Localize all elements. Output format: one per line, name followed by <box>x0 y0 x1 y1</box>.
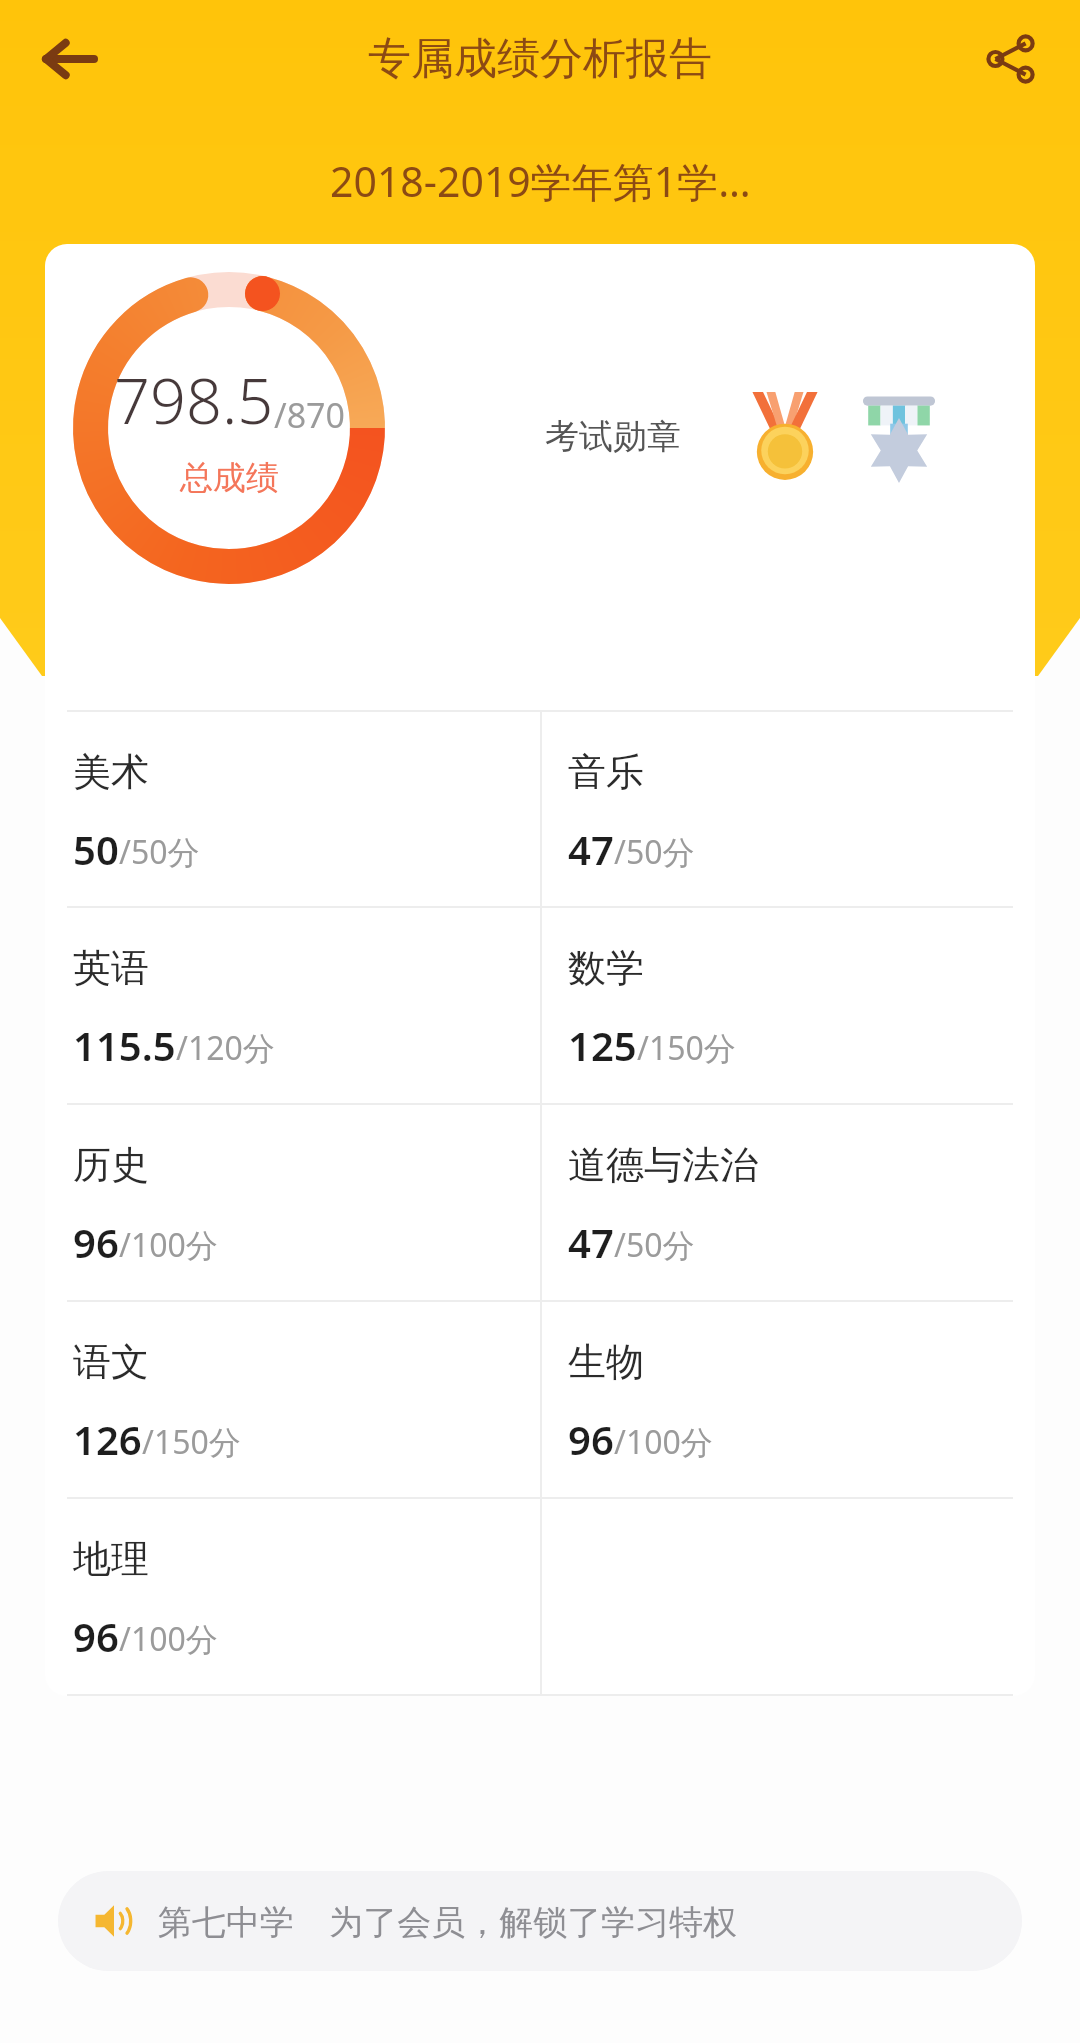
staticText: 生物 <box>568 1338 644 1386</box>
staticText: 47 <box>568 822 614 876</box>
staticText: /50分 <box>614 1223 695 1267</box>
staticText: /120分 <box>176 1026 275 1070</box>
staticText: /870 <box>274 392 345 438</box>
staticText: 125 <box>568 1018 637 1072</box>
button[interactable]: 道德与法治 <box>540 1105 1035 1300</box>
button[interactable]: 音乐 <box>540 712 1035 906</box>
staticText: 115.5 <box>73 1018 176 1072</box>
button[interactable]: 生物 <box>540 1302 1035 1497</box>
staticText: 96 <box>73 1609 119 1663</box>
staticText: 126 <box>73 1412 142 1466</box>
staticText: /100分 <box>119 1617 218 1661</box>
staticText: 总成绩 <box>180 457 279 499</box>
staticText: 美术 <box>73 748 149 796</box>
staticText: 专属成绩分析报告 <box>368 32 712 86</box>
staticText: 2018-2019学年第1学… <box>330 153 751 209</box>
staticText: 地理 <box>73 1535 149 1583</box>
button[interactable]: 第七中学 为了会员，解锁了学习特权 <box>58 1871 1022 1971</box>
button[interactable]: Back <box>22 11 118 107</box>
staticText: 语文 <box>73 1338 149 1386</box>
staticText: 音乐 <box>568 748 644 796</box>
staticText: /100分 <box>614 1420 713 1464</box>
staticText: 96 <box>73 1215 119 1269</box>
button[interactable]: 地理 <box>45 1499 540 1694</box>
staticText: 历史 <box>73 1141 149 1189</box>
staticText: 考试勋章 <box>545 415 681 458</box>
staticText: /100分 <box>119 1223 218 1267</box>
staticText: 数学 <box>568 944 644 992</box>
staticText: 47 <box>568 1215 614 1269</box>
staticText: 96 <box>568 1412 614 1466</box>
staticText: 道德与法治 <box>568 1141 758 1189</box>
staticText: /150分 <box>637 1026 736 1070</box>
button[interactable]: 历史 <box>45 1105 540 1300</box>
staticText: 50 <box>73 822 119 876</box>
button[interactable]: Share <box>962 11 1058 107</box>
staticText: /50分 <box>614 830 695 874</box>
button[interactable]: 美术 <box>45 712 540 906</box>
staticText: /50分 <box>119 830 200 874</box>
staticText: 798.5 <box>114 357 274 443</box>
button[interactable]: 语文 <box>45 1302 540 1497</box>
staticText: 英语 <box>73 944 149 992</box>
button[interactable]: 数学 <box>540 908 1035 1103</box>
button[interactable]: 英语 <box>45 908 540 1103</box>
staticText: 第七中学 为了会员，解锁了学习特权 <box>158 1898 738 1944</box>
staticText: /150分 <box>142 1420 241 1464</box>
